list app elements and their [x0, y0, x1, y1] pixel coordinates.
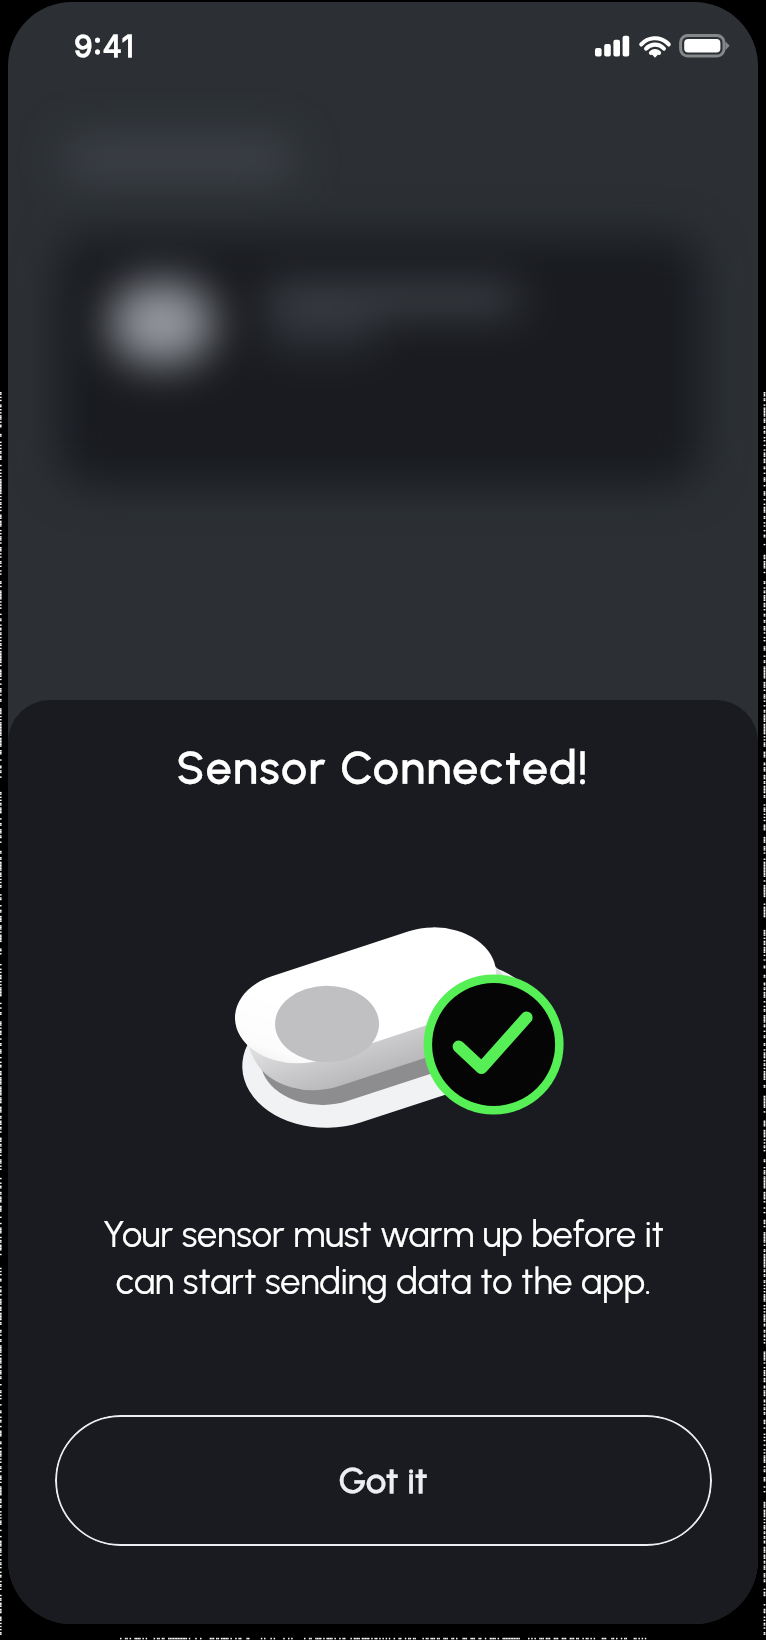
staticText: Got it	[339, 1460, 428, 1502]
button[interactable]: Got it	[55, 1415, 712, 1546]
staticText: Sensor Connected!	[177, 741, 590, 794]
staticText: 9:41	[74, 28, 135, 64]
staticText: Your sensor must warm up before it can s…	[103, 1213, 664, 1303]
other: Status icons	[595, 34, 729, 58]
